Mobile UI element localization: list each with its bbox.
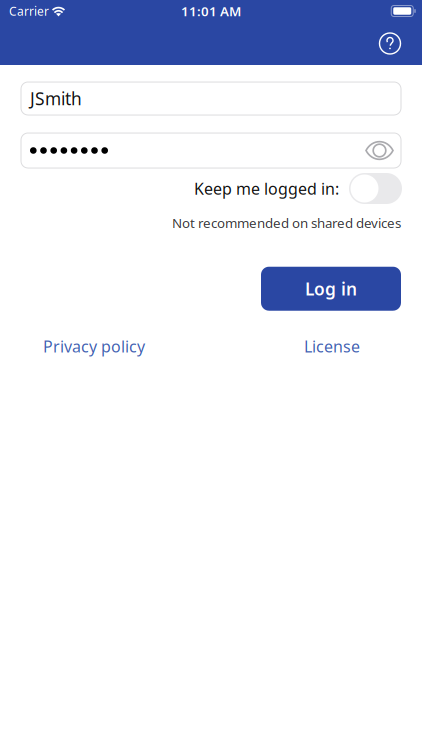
button[interactable]: Keep me logged in xyxy=(349,173,402,204)
staticText: JSmith xyxy=(30,87,82,110)
staticText: License xyxy=(304,336,360,357)
button[interactable]: Password xyxy=(21,133,401,168)
button[interactable]: JSmith xyxy=(21,82,401,115)
staticText: 11:01 AM xyxy=(181,2,241,20)
button[interactable]: Show password xyxy=(365,141,394,160)
staticText: Carrier xyxy=(9,3,49,19)
staticText: Not recommended on shared devices xyxy=(172,214,401,232)
staticText: Privacy policy xyxy=(43,336,145,357)
button[interactable]: Privacy policy xyxy=(43,336,145,357)
staticText: Keep me logged in: xyxy=(194,178,339,199)
button[interactable]: Help xyxy=(375,28,405,58)
button[interactable]: Log in xyxy=(261,267,401,311)
staticText: Log in xyxy=(305,277,357,300)
button[interactable]: License xyxy=(304,336,360,357)
